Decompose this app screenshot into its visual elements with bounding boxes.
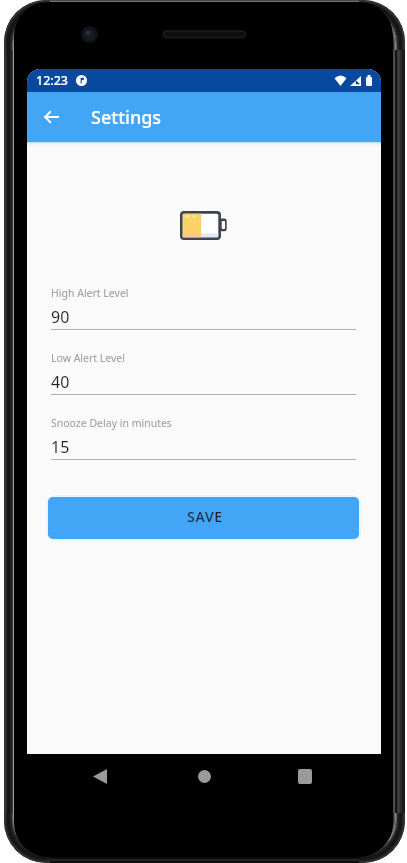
button[interactable]: SAVE xyxy=(48,497,359,539)
button[interactable]: Back xyxy=(82,758,118,794)
button[interactable]: Recent apps xyxy=(287,758,323,794)
staticText: High Alert Level xyxy=(51,286,129,300)
staticText: SAVE xyxy=(187,507,223,526)
staticText: 12:23 xyxy=(36,72,69,89)
staticText: Low Alert Level xyxy=(51,351,126,365)
staticText: Settings xyxy=(91,105,162,130)
button[interactable]: Navigate up xyxy=(31,97,71,137)
button[interactable]: Home xyxy=(186,758,222,794)
staticText: 40 xyxy=(51,371,70,393)
staticText: 15 xyxy=(51,436,70,458)
staticText: Snooze Delay in minutes xyxy=(51,416,172,430)
staticText: 90 xyxy=(51,306,70,328)
